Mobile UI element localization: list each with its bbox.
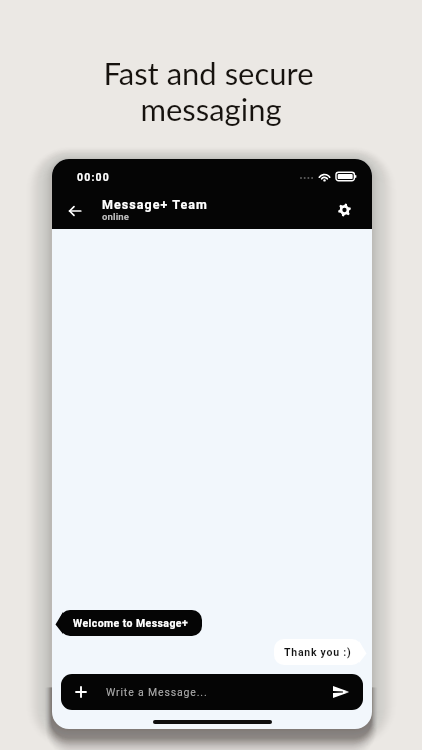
staticText: 00:00 [77,171,111,183]
button[interactable]: Thank you :) [274,639,362,665]
staticText: Fast and secure [103,54,314,91]
staticText: Thank you :) [284,646,352,658]
staticText: Write a Message... [106,686,208,698]
staticText: Message+ Team [102,197,208,212]
button[interactable]: Welcome to Message+ [60,610,202,636]
staticText: online [102,211,130,222]
staticText: Welcome to Message+ [73,617,189,629]
button[interactable]: Attach [61,674,363,710]
staticText: messaging [140,90,282,127]
other: Send [333,686,349,698]
other: Attach [75,686,87,698]
button[interactable]: Settings [332,198,358,224]
button[interactable]: Back [62,198,88,224]
